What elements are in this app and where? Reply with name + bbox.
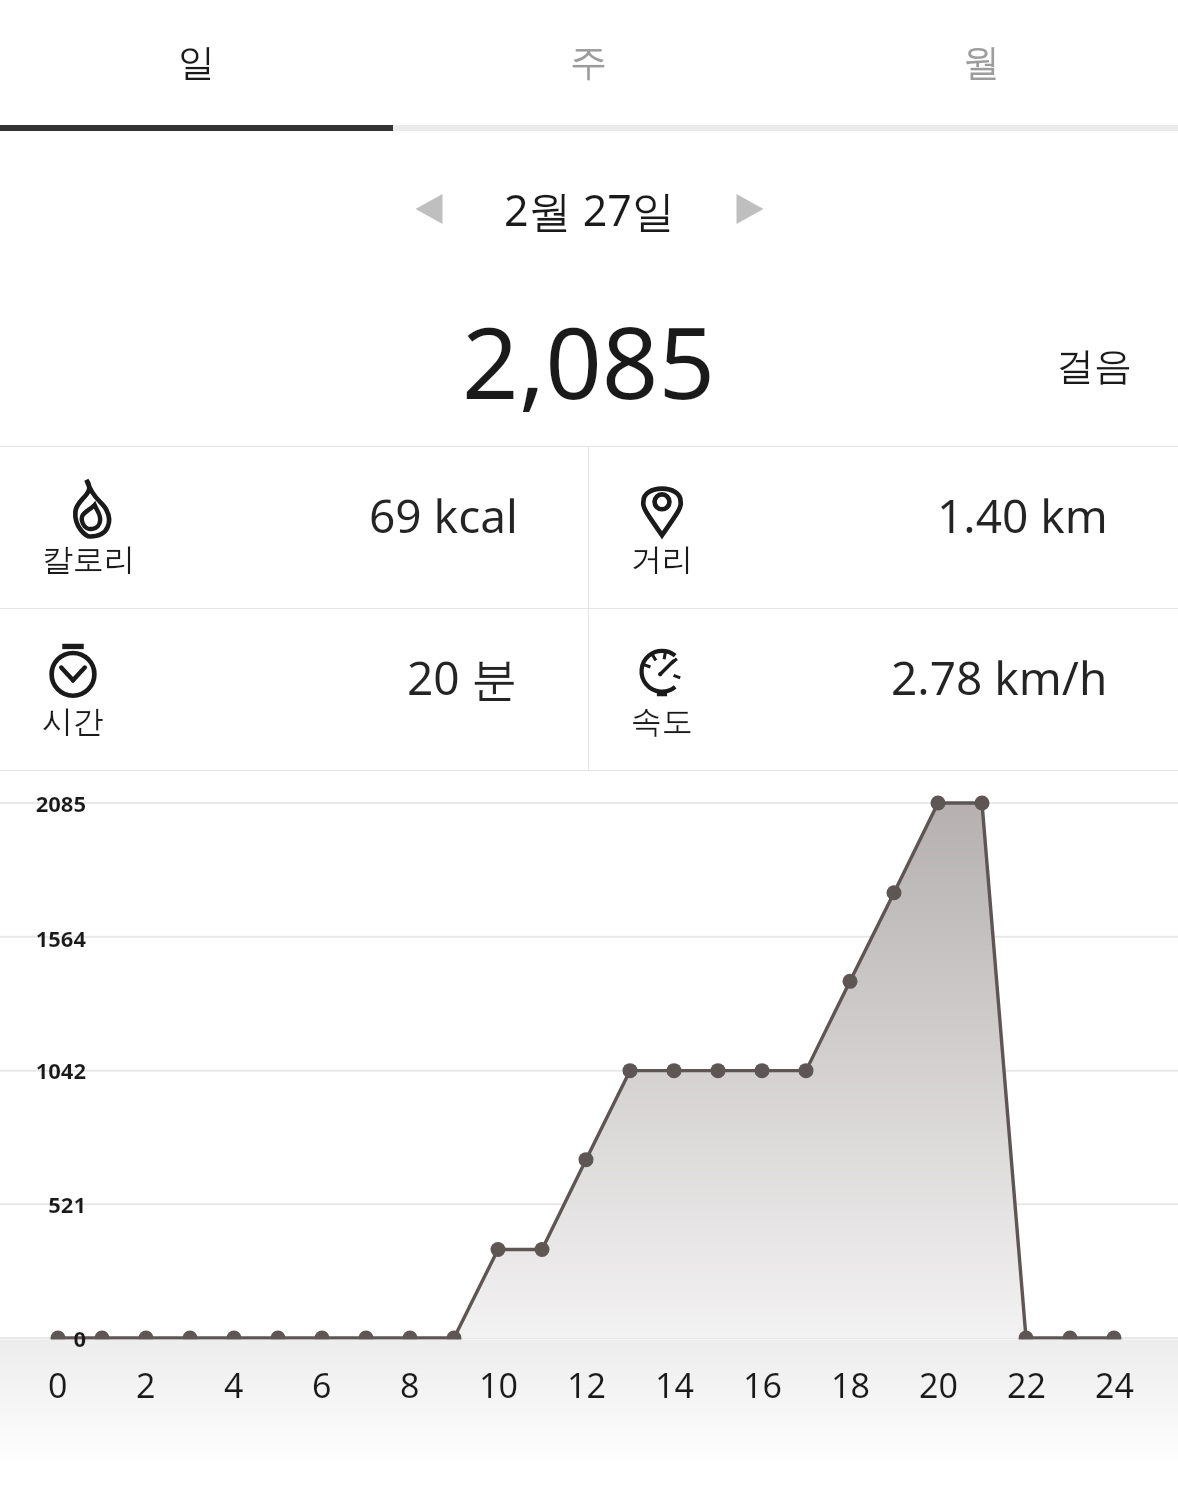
staticText: 주 [570, 39, 607, 86]
staticText: 1.40 km [937, 484, 1108, 547]
staticText: 2085 [35, 788, 86, 818]
staticText: 0 [73, 1323, 86, 1353]
staticText: 22 [1007, 1362, 1046, 1408]
button[interactable]: 주 [392, 0, 785, 125]
staticText: 2,085 [462, 293, 716, 428]
staticText: 10 [479, 1362, 518, 1408]
button[interactable]: 거리 [589, 447, 1178, 608]
button[interactable]: 일 [0, 0, 392, 125]
staticText: 거리 [631, 540, 693, 579]
staticText: 2월 27일 [504, 180, 675, 239]
staticText: 20 [919, 1362, 958, 1408]
staticText: 20 분 [407, 646, 518, 709]
staticText: 0 [48, 1362, 68, 1408]
staticText: 12 [567, 1362, 606, 1408]
staticText: 2.78 km/h [891, 646, 1108, 709]
button[interactable]: 다음 날짜 [713, 172, 787, 246]
staticText: 4 [224, 1362, 244, 1408]
staticText: 일 [178, 39, 215, 86]
staticText: 속도 [631, 702, 693, 741]
staticText: 521 [48, 1189, 86, 1219]
button[interactable]: 이전 날짜 [392, 172, 466, 246]
staticText: 걸음 [1056, 342, 1132, 390]
staticText: 칼로리 [42, 540, 135, 579]
button[interactable]: 칼로리 [0, 447, 588, 608]
staticText: 월 [963, 39, 1000, 86]
staticText: 6 [312, 1362, 332, 1408]
staticText: 69 kcal [369, 484, 518, 547]
staticText: 18 [831, 1362, 870, 1408]
button[interactable]: 월 [785, 0, 1178, 125]
staticText: 8 [400, 1362, 420, 1408]
staticText: 1564 [35, 923, 86, 953]
staticText: 2 [136, 1362, 156, 1408]
staticText: 1042 [35, 1055, 86, 1085]
button[interactable]: 시간 [0, 609, 588, 770]
button[interactable]: 속도 [589, 609, 1178, 770]
staticText: 14 [655, 1362, 694, 1408]
staticText: 16 [743, 1362, 782, 1408]
staticText: 24 [1095, 1362, 1134, 1408]
staticText: 시간 [42, 702, 104, 741]
